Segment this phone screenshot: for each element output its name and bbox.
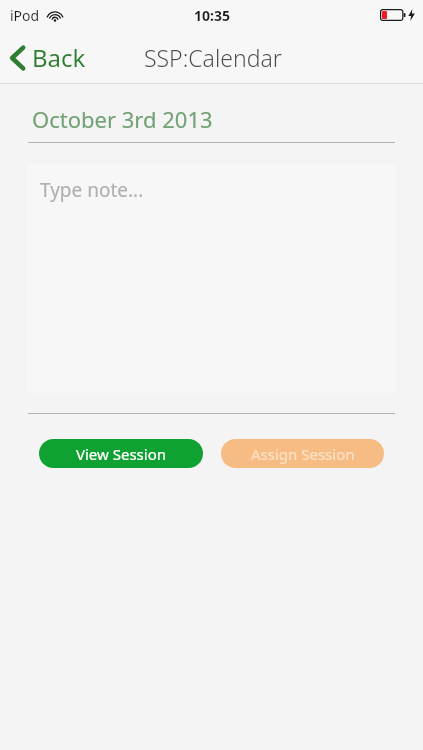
button[interactable]: Type note... [27,164,396,393]
staticText: Type note... [40,177,144,203]
staticText: Assign Session [251,444,355,464]
staticText: SSP:Calendar [144,42,282,73]
staticText: View Session [76,444,167,464]
button[interactable]: View Session [39,439,203,468]
button[interactable]: Back [0,35,100,80]
staticText: October 3rd 2013 [32,104,213,134]
staticText: iPod [10,6,40,25]
staticText: 10:35 [194,6,230,25]
staticText: Back [32,41,86,74]
button[interactable]: Assign Session [221,439,384,468]
